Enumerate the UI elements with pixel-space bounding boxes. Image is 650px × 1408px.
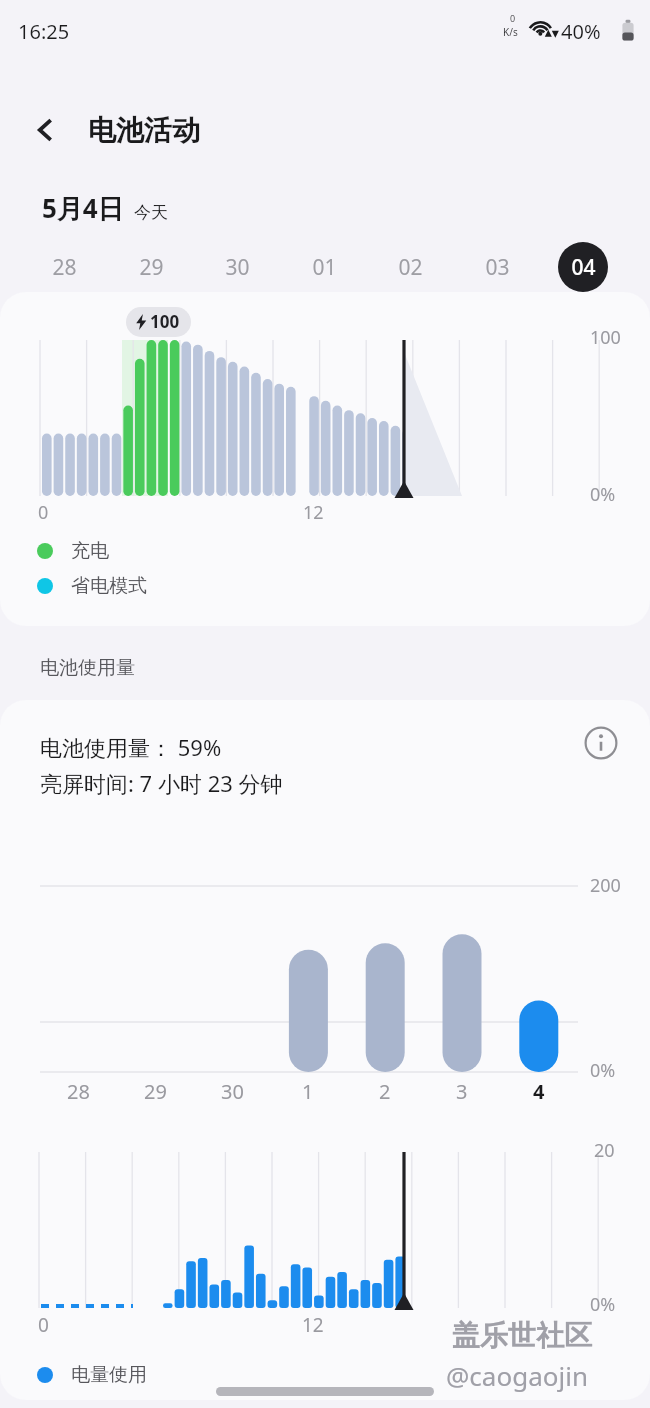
button[interactable]: 2 (363, 1078, 407, 1105)
staticText: 1 (302, 1078, 314, 1105)
staticText: 2 (379, 1078, 391, 1105)
staticText: 0% (590, 1292, 616, 1317)
staticText: 0% (590, 1058, 616, 1083)
button[interactable]: 100 (135, 310, 180, 333)
staticText: K/s (503, 25, 518, 39)
button[interactable]: 充电 (37, 536, 109, 566)
staticText: 12 (302, 1312, 324, 1338)
button[interactable]: 01 (299, 242, 349, 292)
button[interactable]: Information (578, 720, 624, 766)
button[interactable]: 4 (517, 1078, 561, 1105)
button[interactable]: 30 (212, 242, 262, 292)
button[interactable]: 1 (286, 1078, 330, 1105)
staticText: 充电 (71, 539, 109, 563)
staticText: 3 (456, 1078, 468, 1105)
button[interactable]: 3 (440, 1078, 484, 1105)
staticText: 盖乐世社区 (452, 1318, 592, 1353)
staticText: 28 (67, 1078, 90, 1105)
staticText: @caogaojin (446, 1358, 588, 1393)
staticText: 5月4日 (42, 190, 124, 226)
button[interactable]: 28 (39, 242, 89, 292)
staticText: 4 (533, 1078, 545, 1105)
button[interactable]: 省电模式 (37, 571, 147, 601)
staticText: 电池活动 (88, 113, 200, 148)
staticText: 100 (590, 325, 621, 350)
staticText: 电池使用量： 59% (40, 732, 222, 762)
staticText: 30 (221, 1078, 244, 1105)
staticText: 40% (561, 18, 601, 45)
staticText: 29 (144, 1078, 167, 1105)
staticText: 01 (312, 253, 337, 282)
staticText: 16:25 (18, 18, 70, 45)
staticText: 亮屏时间: 7 小时 23 分钟 (40, 768, 283, 798)
staticText: 28 (52, 253, 77, 282)
button[interactable]: 04 (558, 242, 608, 292)
staticText: 0 (38, 500, 49, 525)
staticText: 100 (150, 310, 180, 333)
staticText: 电量使用 (71, 1363, 147, 1387)
button[interactable]: 02 (385, 242, 435, 292)
button[interactable]: 30 (210, 1078, 254, 1105)
staticText: 电池使用量 (40, 656, 135, 680)
staticText: 今天 (134, 202, 168, 223)
button[interactable]: 29 (126, 242, 176, 292)
staticText: 29 (139, 253, 164, 282)
button[interactable]: 28 (56, 1078, 100, 1105)
staticText: 20 (594, 1138, 615, 1163)
staticText: 0 (38, 1312, 49, 1338)
staticText: 30 (225, 253, 250, 282)
button[interactable]: Back (20, 104, 72, 156)
button[interactable]: 电量使用 (37, 1360, 147, 1390)
staticText: 200 (590, 873, 621, 898)
staticText: 省电模式 (71, 574, 147, 598)
staticText: 02 (398, 253, 423, 282)
staticText: 0 (510, 12, 516, 24)
staticText: 0% (590, 482, 616, 507)
staticText: 04 (571, 253, 596, 282)
staticText: 03 (485, 253, 510, 282)
button[interactable]: 29 (133, 1078, 177, 1105)
staticText: 12 (303, 500, 324, 525)
button[interactable]: 03 (472, 242, 522, 292)
